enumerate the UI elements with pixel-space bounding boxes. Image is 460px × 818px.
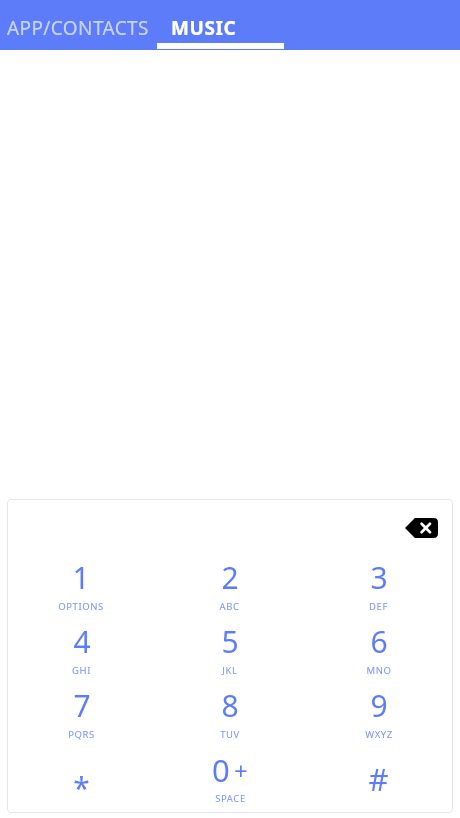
- staticText: DEF: [369, 600, 388, 613]
- button[interactable]: APP/CONTACTS: [0, 0, 157, 50]
- staticText: 1: [72, 557, 90, 598]
- staticText: 5: [221, 621, 239, 662]
- staticText: SPACE: [215, 792, 246, 805]
- button[interactable]: *: [7, 749, 155, 813]
- staticText: +: [234, 754, 248, 787]
- staticText: 6: [370, 621, 388, 662]
- staticText: APP/CONTACTS: [7, 15, 149, 41]
- staticText: GHI: [72, 664, 91, 677]
- staticText: 9: [370, 685, 388, 726]
- button[interactable]: 0: [155, 749, 304, 813]
- staticText: 8: [221, 685, 239, 726]
- button[interactable]: 1: [7, 557, 155, 621]
- button[interactable]: 9: [304, 685, 453, 749]
- staticText: #: [368, 758, 389, 800]
- button[interactable]: 8: [155, 685, 304, 749]
- staticText: *: [73, 767, 90, 808]
- staticText: 2: [221, 557, 239, 598]
- button[interactable]: MUSIC: [157, 0, 284, 50]
- button[interactable]: 7: [7, 685, 155, 749]
- staticText: MUSIC: [171, 15, 237, 41]
- staticText: JKL: [222, 664, 238, 677]
- staticText: 3: [370, 557, 388, 598]
- button[interactable]: 2: [155, 557, 304, 621]
- staticText: 0: [212, 749, 230, 791]
- button[interactable]: 3: [304, 557, 453, 621]
- staticText: WXYZ: [365, 728, 393, 741]
- button[interactable]: 6: [304, 621, 453, 685]
- button[interactable]: Backspace: [403, 514, 439, 542]
- staticText: 7: [73, 685, 91, 726]
- staticText: ABC: [219, 600, 240, 613]
- staticText: OPTIONS: [58, 600, 104, 613]
- button[interactable]: #: [304, 749, 453, 813]
- staticText: TUV: [220, 728, 240, 741]
- staticText: 4: [73, 621, 91, 662]
- button[interactable]: 5: [155, 621, 304, 685]
- button[interactable]: 4: [7, 621, 155, 685]
- staticText: MNO: [366, 664, 392, 677]
- staticText: PQRS: [68, 728, 95, 741]
